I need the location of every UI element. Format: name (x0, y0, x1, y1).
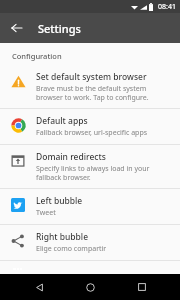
staticText: Tweet (36, 208, 56, 218)
staticText: Fallback browser, url-specific apps (36, 128, 148, 138)
button[interactable]: Set default system browser (0, 65, 180, 108)
staticText: Configuration (12, 51, 62, 61)
staticText: Set default system browser (36, 71, 147, 83)
staticText: Domain redirects (36, 151, 106, 163)
button[interactable]: Domain redirects (0, 145, 180, 188)
staticText: Brave must be the default system browser… (36, 84, 172, 102)
staticText: Settings (38, 21, 81, 36)
staticText: Right bubble (36, 231, 89, 243)
button[interactable]: Back (26, 274, 52, 300)
button[interactable]: Recent apps (129, 274, 155, 300)
button[interactable]: Right bubble (0, 225, 180, 260)
staticText: Left bubble (36, 195, 83, 207)
button[interactable]: Home (77, 274, 103, 300)
staticText: Default apps (36, 115, 88, 127)
button[interactable]: Default apps (0, 109, 180, 144)
staticText: 08:41 (158, 2, 176, 12)
staticText: Specify links to always load in your fal… (36, 164, 172, 182)
button[interactable]: Left bubble (0, 189, 180, 224)
staticText: Elige como compartir (36, 244, 107, 254)
button[interactable]: Back (6, 17, 28, 39)
